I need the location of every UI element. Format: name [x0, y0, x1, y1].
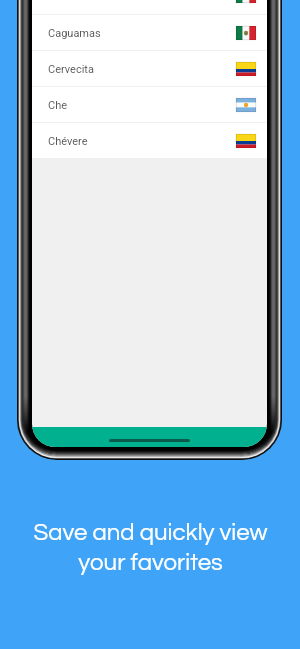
- staticText: Save and quickly view your favorites: [33, 520, 268, 575]
- button[interactable]: Che: [32, 87, 267, 122]
- button[interactable]: Chévere: [32, 123, 267, 158]
- staticText: Che: [48, 99, 68, 112]
- button[interactable]: Cervecita: [32, 51, 267, 86]
- button[interactable]: Caguamas: [32, 15, 267, 50]
- staticText: Chévere: [48, 135, 88, 148]
- staticText: Caguamas: [48, 27, 101, 40]
- staticText: Cervecita: [48, 63, 94, 76]
